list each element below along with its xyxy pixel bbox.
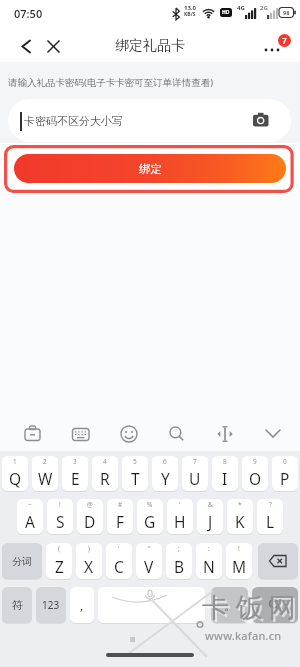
- button[interactable]: %: [137, 499, 163, 534]
- staticText: H: [174, 511, 186, 532]
- button[interactable]: [12, 33, 40, 59]
- staticText: 7: [282, 35, 287, 46]
- button[interactable]: ': [106, 543, 132, 579]
- button[interactable]: 6: [152, 456, 178, 491]
- staticText: ": [148, 544, 151, 553]
- button[interactable]: ~: [17, 499, 43, 534]
- staticText: K: [235, 511, 245, 532]
- staticText: 卡密码不区分大小写: [24, 114, 123, 128]
- staticText: ': [179, 500, 181, 509]
- staticText: 07:50: [14, 6, 43, 21]
- staticText: (: [58, 544, 60, 553]
- staticText: T: [131, 468, 140, 489]
- staticText: 请输入礼品卡密码(电子卡卡密可至订单详情查看): [8, 76, 214, 89]
- button[interactable]: 123: [36, 587, 66, 623]
- staticText: 3: [73, 457, 77, 466]
- button[interactable]: [67, 420, 95, 448]
- staticText: Y: [161, 468, 170, 489]
- staticText: 4G: [237, 4, 245, 12]
- button[interactable]: ;: [166, 543, 192, 579]
- button[interactable]: 1: [2, 456, 28, 491]
- button[interactable]: (: [46, 543, 72, 579]
- staticText: @: [87, 500, 93, 509]
- staticText: Q: [9, 468, 22, 489]
- staticText: 绑定礼品卡: [115, 37, 185, 55]
- button[interactable]: 7: [182, 456, 208, 491]
- button[interactable]: 7: [258, 30, 294, 56]
- button[interactable]: 8: [212, 456, 238, 491]
- button[interactable]: &: [197, 499, 223, 534]
- button[interactable]: !: [226, 543, 252, 579]
- button[interactable]: 符: [2, 587, 32, 623]
- staticText: 1: [13, 457, 17, 466]
- staticText: KB/S: [184, 11, 196, 18]
- button[interactable]: ': [167, 499, 193, 534]
- staticText: G: [144, 511, 156, 532]
- staticText: O: [249, 468, 262, 489]
- button[interactable]: [163, 420, 191, 448]
- button[interactable]: !: [47, 499, 73, 534]
- button[interactable]: [115, 420, 143, 448]
- staticText: D: [84, 511, 96, 532]
- button[interactable]: 5: [122, 456, 148, 491]
- button[interactable]: ?: [257, 499, 283, 534]
- staticText: 卡饭网: [202, 591, 300, 625]
- button[interactable]: 9: [242, 456, 268, 491]
- staticText: 13.0: [184, 4, 196, 12]
- staticText: ~: [28, 500, 32, 509]
- staticText: 123: [42, 598, 60, 612]
- button[interactable]: [98, 587, 205, 623]
- button[interactable]: :: [196, 543, 222, 579]
- staticText: U: [189, 468, 201, 489]
- button[interactable]: ,: [70, 587, 94, 623]
- button[interactable]: [252, 587, 298, 623]
- staticText: www.kafan.cn: [205, 628, 282, 643]
- staticText: F: [116, 511, 125, 532]
- staticText: ': [118, 544, 120, 553]
- button[interactable]: ): [76, 543, 102, 579]
- button[interactable]: [258, 543, 298, 579]
- button[interactable]: [8, 99, 291, 142]
- staticText: B: [174, 556, 185, 577]
- staticText: 0: [283, 457, 287, 466]
- staticText: 符: [12, 598, 23, 612]
- staticText: 98: [283, 9, 290, 16]
- staticText: *: [238, 500, 242, 509]
- button[interactable]: [40, 33, 66, 59]
- staticText: !: [59, 500, 61, 509]
- staticText: 8: [223, 457, 227, 466]
- staticText: E: [71, 468, 80, 489]
- staticText: HD: [222, 9, 230, 16]
- staticText: N: [203, 556, 215, 577]
- staticText: 2G: [260, 4, 268, 12]
- staticText: 5: [133, 457, 137, 466]
- staticText: 6: [163, 457, 167, 466]
- staticText: M: [232, 556, 247, 577]
- staticText: ,: [80, 597, 84, 613]
- staticText: S: [56, 511, 65, 532]
- staticText: X: [84, 556, 94, 577]
- button[interactable]: ": [136, 543, 162, 579]
- staticText: !: [238, 544, 240, 553]
- staticText: %: [147, 500, 153, 509]
- staticText: P: [280, 468, 290, 489]
- staticText: C: [114, 556, 124, 577]
- button[interactable]: 3: [62, 456, 88, 491]
- button[interactable]: 2: [32, 456, 58, 491]
- staticText: 9: [253, 457, 257, 466]
- staticText: &: [208, 500, 213, 509]
- button[interactable]: 绑定: [14, 154, 286, 183]
- button[interactable]: *: [227, 499, 253, 534]
- staticText: A: [25, 511, 35, 532]
- button[interactable]: [259, 420, 287, 448]
- staticText: 卡饭网: [204, 593, 300, 627]
- button[interactable]: [19, 420, 47, 448]
- button[interactable]: [211, 420, 239, 448]
- button[interactable]: 。: [211, 587, 248, 623]
- staticText: I: [222, 468, 228, 489]
- button[interactable]: 0: [272, 456, 298, 491]
- button[interactable]: 分词: [2, 543, 42, 579]
- button[interactable]: @: [77, 499, 103, 534]
- button[interactable]: 4: [92, 456, 118, 491]
- button[interactable]: #: [107, 499, 133, 534]
